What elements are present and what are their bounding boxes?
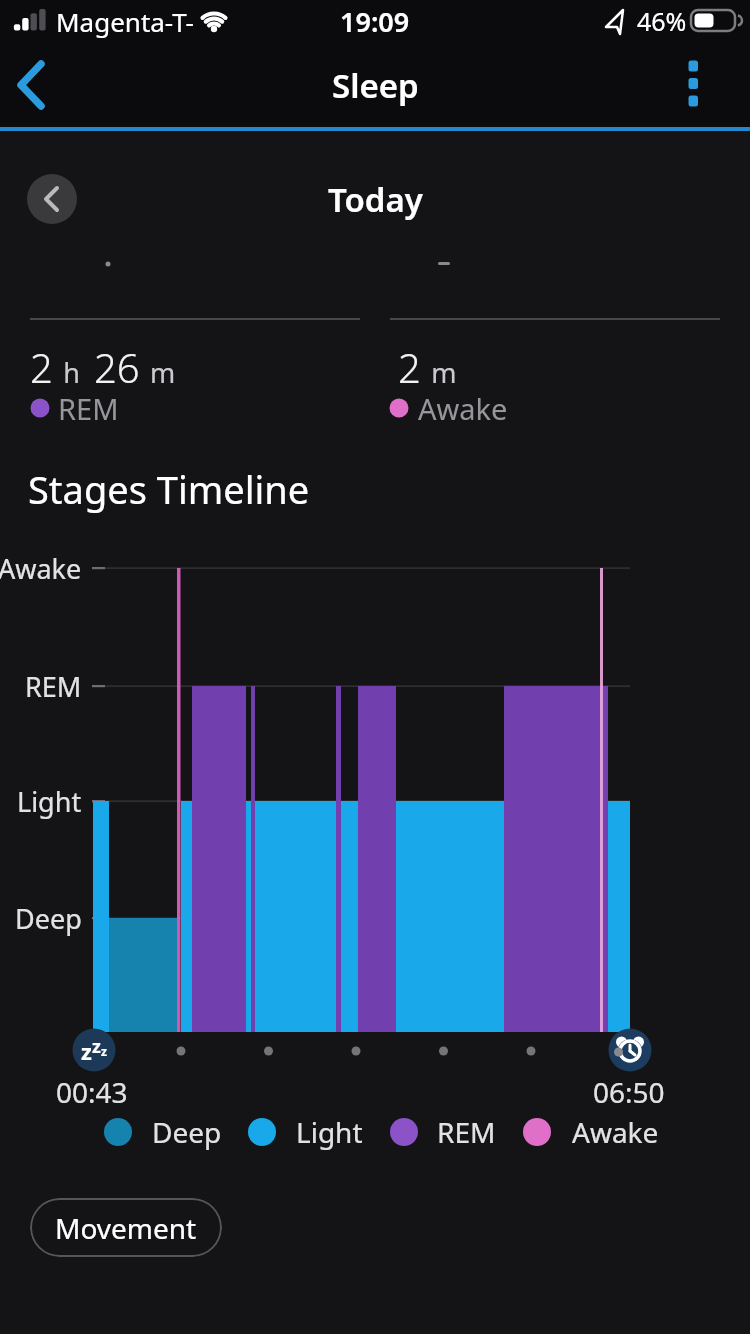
staticText: z	[92, 1034, 101, 1059]
button[interactable]	[668, 52, 724, 116]
staticText: Awake	[572, 1113, 659, 1151]
staticText: REM	[437, 1113, 496, 1151]
staticText: Light	[296, 1113, 363, 1151]
staticText: z	[101, 1043, 107, 1059]
staticText: 2 m	[398, 340, 457, 392]
staticText: Stages Timeline	[28, 463, 310, 515]
staticText: 46%	[637, 4, 687, 38]
staticText: Sleep	[332, 63, 419, 108]
staticText: Deep	[15, 900, 82, 937]
staticText: Awake	[418, 389, 508, 428]
staticText: Movement	[55, 1209, 197, 1247]
staticText: 06:50	[593, 1073, 665, 1111]
staticText: z	[81, 1036, 92, 1066]
staticText: 19:09	[340, 3, 410, 40]
staticText: Light	[17, 783, 82, 820]
staticText: Deep	[152, 1113, 222, 1151]
staticText: REM	[25, 668, 82, 705]
staticText: 00:43	[56, 1073, 128, 1111]
button[interactable]: Movement	[30, 1198, 222, 1257]
button[interactable]	[27, 174, 77, 224]
staticText: Today	[328, 177, 423, 222]
staticText: 2 h 26 m	[30, 340, 176, 392]
button[interactable]	[8, 56, 64, 116]
staticText: Awake	[0, 550, 82, 587]
staticText: Magenta-T-	[56, 4, 194, 39]
staticText: REM	[58, 389, 119, 428]
